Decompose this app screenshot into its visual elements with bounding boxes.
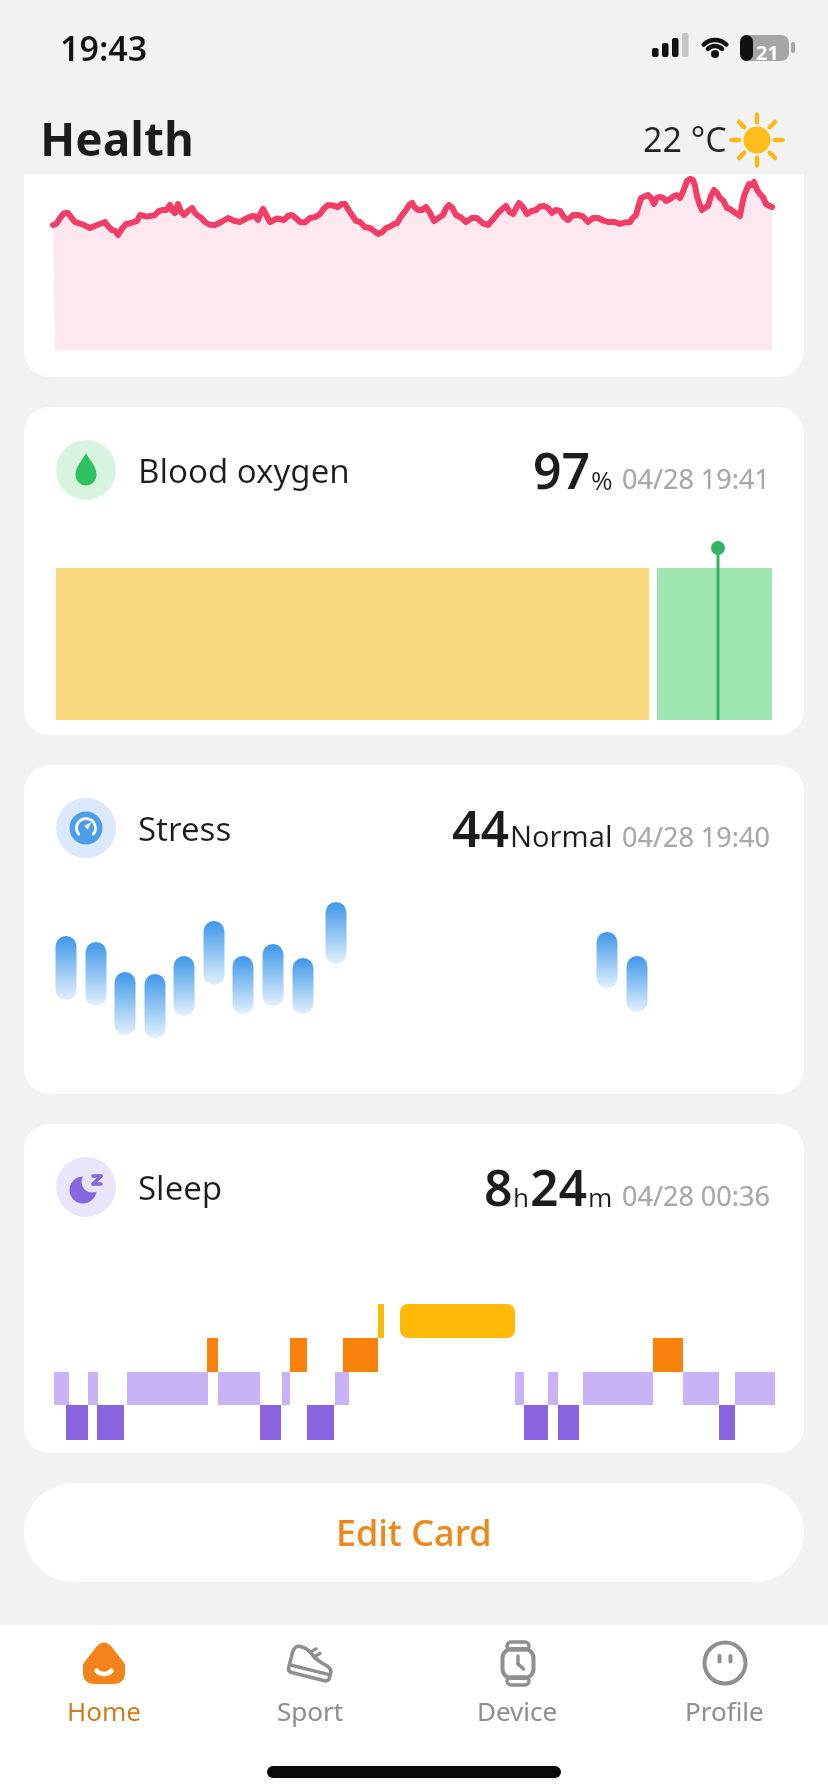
- button[interactable]: Stress: [24, 765, 804, 1094]
- button[interactable]: Blood oxygen: [24, 407, 804, 735]
- staticText: 04/28 19:41: [622, 460, 770, 497]
- button[interactable]: Device: [414, 1637, 621, 1728]
- staticText: 24: [530, 1153, 588, 1221]
- button[interactable]: Sleep: [24, 1124, 804, 1453]
- staticText: Home: [67, 1693, 141, 1728]
- staticText: Health: [40, 107, 194, 170]
- button[interactable]: Edit Card: [24, 1483, 804, 1582]
- button[interactable]: Profile: [621, 1637, 828, 1728]
- staticText: 04/28 19:40: [622, 818, 770, 855]
- staticText: m: [588, 1179, 613, 1214]
- staticText: Profile: [685, 1693, 764, 1728]
- staticText: 8: [484, 1153, 513, 1221]
- staticText: Stress: [138, 806, 232, 851]
- button[interactable]: Sport: [207, 1637, 414, 1728]
- staticText: 21: [756, 39, 779, 66]
- staticText: 22 °C: [643, 116, 727, 162]
- staticText: 97: [533, 436, 591, 504]
- button[interactable]: [24, 174, 804, 377]
- staticText: Blood oxygen: [138, 448, 350, 493]
- staticText: 44: [452, 794, 510, 862]
- staticText: Sleep: [138, 1165, 223, 1210]
- staticText: 04/28 00:36: [622, 1177, 770, 1214]
- staticText: Device: [477, 1693, 558, 1728]
- staticText: h: [513, 1179, 530, 1214]
- staticText: %: [591, 462, 613, 497]
- button[interactable]: Home: [0, 1637, 207, 1728]
- staticText: 19:43: [60, 25, 148, 71]
- staticText: Normal: [510, 816, 613, 855]
- staticText: Sport: [277, 1693, 344, 1728]
- staticText: Edit Card: [336, 1508, 492, 1557]
